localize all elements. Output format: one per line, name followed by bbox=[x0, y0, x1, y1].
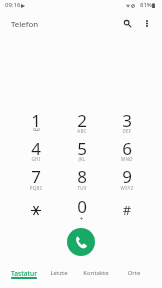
staticText: GHI bbox=[15, 156, 57, 162]
button[interactable] bbox=[106, 164, 148, 191]
staticText: DEF bbox=[106, 128, 148, 134]
staticText: 7 bbox=[15, 165, 57, 188]
button[interactable] bbox=[15, 164, 57, 191]
staticText: 4 bbox=[15, 137, 57, 160]
button[interactable] bbox=[61, 136, 103, 163]
staticText: 09:16 bbox=[5, 1, 21, 9]
staticText: TUV bbox=[61, 185, 103, 191]
staticText: JKL bbox=[61, 156, 103, 162]
staticText: Tastatur bbox=[5, 269, 43, 278]
staticText: Telefon bbox=[11, 19, 39, 30]
button[interactable]: Weitere Optionen bbox=[138, 15, 155, 32]
staticText: WXYZ bbox=[106, 185, 148, 191]
button[interactable]: Suchen bbox=[119, 15, 136, 32]
button[interactable] bbox=[61, 164, 103, 191]
button[interactable] bbox=[5, 264, 43, 286]
staticText: 6 bbox=[106, 137, 148, 160]
staticText: Letzte bbox=[40, 269, 78, 277]
staticText: ABC bbox=[61, 128, 103, 134]
button[interactable] bbox=[40, 264, 78, 286]
staticText: Orte bbox=[115, 269, 153, 277]
staticText: 1 bbox=[15, 109, 57, 132]
staticText: 81% bbox=[140, 1, 152, 9]
staticText: 5 bbox=[61, 137, 103, 160]
button[interactable]: Anrufen bbox=[67, 228, 95, 256]
staticText: 8 bbox=[61, 165, 103, 188]
button[interactable]: Raute bbox=[106, 194, 148, 221]
staticText: # bbox=[106, 201, 148, 219]
button[interactable] bbox=[15, 136, 57, 163]
button[interactable] bbox=[77, 264, 115, 286]
button[interactable] bbox=[106, 136, 148, 163]
button[interactable]: Stern bbox=[15, 194, 57, 221]
staticText: 3 bbox=[106, 109, 148, 132]
button[interactable] bbox=[15, 108, 57, 135]
staticText: Kontakte bbox=[77, 269, 115, 277]
button[interactable] bbox=[61, 194, 103, 221]
staticText: 2 bbox=[61, 109, 103, 132]
button[interactable] bbox=[61, 108, 103, 135]
button[interactable] bbox=[115, 264, 153, 286]
button[interactable] bbox=[106, 108, 148, 135]
staticText: PQRS bbox=[15, 185, 57, 191]
staticText: 9 bbox=[106, 165, 148, 188]
staticText: MNO bbox=[106, 156, 148, 162]
staticText: 0 bbox=[61, 195, 103, 218]
